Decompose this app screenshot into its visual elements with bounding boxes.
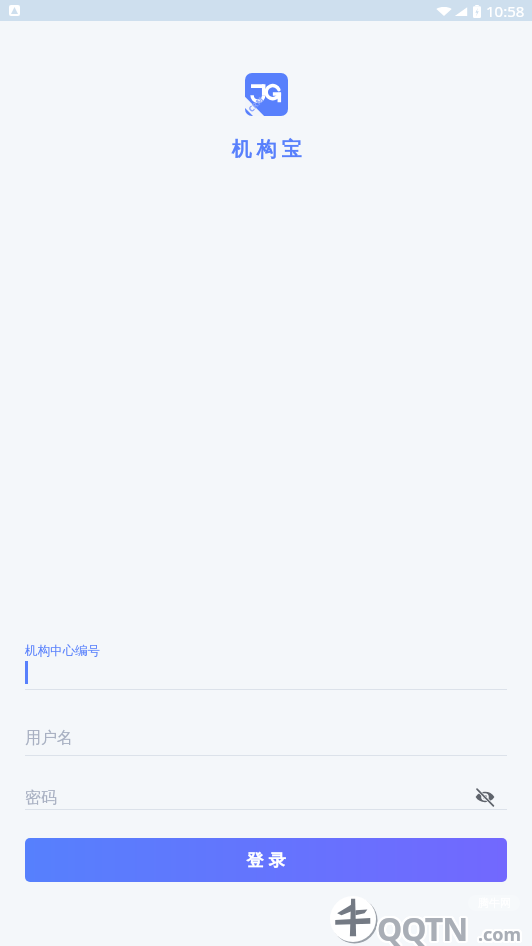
staticText: .com: [478, 920, 522, 945]
staticText: .com: [477, 923, 521, 946]
staticText: .com: [477, 922, 521, 946]
staticText: .com: [479, 922, 523, 946]
staticText: 10:58: [486, 1, 525, 21]
button[interactable]: Show password: [471, 785, 499, 809]
staticText: 机构中心编号: [25, 643, 100, 659]
staticText: 密码: [25, 788, 57, 808]
staticText: .com: [480, 923, 524, 946]
staticText: QQTN: [379, 908, 470, 946]
staticText: .com: [479, 921, 523, 946]
staticText: QQTN: [378, 908, 469, 946]
staticText: QQTN: [376, 908, 467, 946]
staticText: .com: [479, 923, 523, 946]
button[interactable]: 用户名: [25, 726, 507, 756]
staticText: QQTN: [377, 906, 468, 946]
staticText: QQTN: [376, 907, 467, 946]
staticText: QQTN: [378, 905, 469, 946]
staticText: .com: [478, 922, 522, 946]
staticText: 用户名: [25, 728, 73, 748]
staticText: QQTN: [379, 906, 470, 946]
button[interactable]: 机构中心编号: [25, 642, 507, 690]
staticText: QQTN: [379, 907, 470, 946]
staticText: QQTN: [376, 906, 467, 946]
staticText: .com: [476, 923, 520, 946]
staticText: QQTN: [377, 907, 468, 946]
staticText: CRM: [246, 94, 266, 114]
staticText: .com: [478, 924, 522, 946]
staticText: QQTN: [377, 909, 468, 946]
staticText: QQTN: [375, 908, 466, 946]
button[interactable]: 密码: [25, 786, 507, 810]
staticText: .com: [480, 921, 524, 946]
staticText: .com: [479, 924, 523, 946]
button[interactable]: 登录: [25, 838, 507, 882]
staticText: QQTN: [376, 905, 467, 946]
staticText: QQTN: [375, 907, 466, 946]
staticText: .com: [476, 922, 520, 946]
staticText: .com: [476, 921, 520, 946]
staticText: QQTN: [376, 909, 467, 946]
staticText: QQTN: [375, 906, 466, 946]
staticText: 腾牛网: [478, 896, 511, 910]
staticText: .com: [477, 924, 521, 946]
staticText: .com: [477, 920, 521, 945]
staticText: QQTN: [377, 908, 468, 946]
staticText: 机构宝: [229, 137, 304, 162]
staticText: QQTN: [377, 905, 468, 946]
staticText: QQTN: [377, 907, 468, 946]
staticText: .com: [477, 921, 521, 946]
staticText: .com: [479, 920, 523, 945]
staticText: QQTN: [378, 906, 469, 946]
staticText: .com: [480, 922, 524, 946]
staticText: QQTN: [378, 907, 469, 946]
staticText: QQTN: [378, 909, 469, 946]
staticText: .com: [478, 922, 522, 946]
staticText: .com: [478, 923, 522, 946]
staticText: 登录: [244, 850, 288, 871]
staticText: .com: [478, 921, 522, 946]
